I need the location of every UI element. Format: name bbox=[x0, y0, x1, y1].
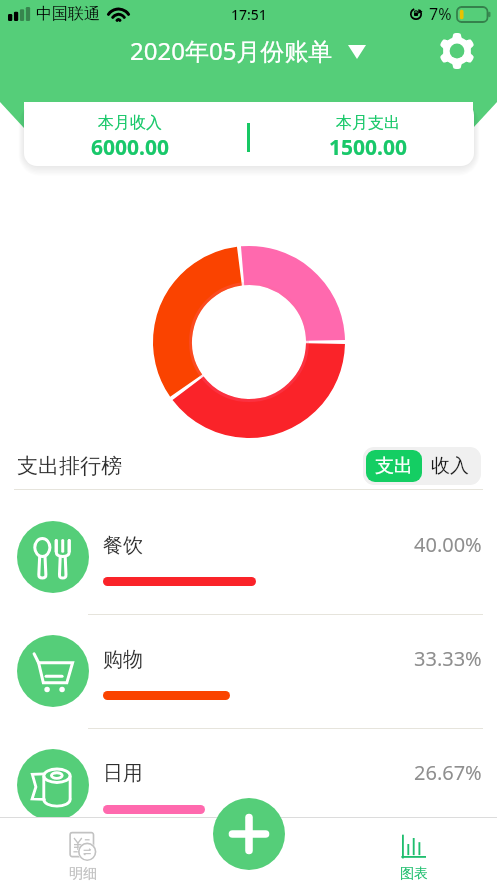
staticText: 明细 bbox=[69, 865, 97, 883]
staticText: 26.67% bbox=[414, 759, 482, 786]
staticText: 支出排行榜 bbox=[17, 453, 122, 479]
staticText: 6000.00 bbox=[91, 133, 169, 162]
button[interactable]: 图表 bbox=[331, 817, 497, 883]
staticText: 支出 bbox=[375, 454, 413, 478]
staticText: 7% bbox=[429, 3, 452, 25]
button[interactable]: 明细 bbox=[0, 817, 165, 883]
staticText: 中国联通 bbox=[36, 4, 100, 24]
button[interactable]: 2020年05月份账单 bbox=[130, 34, 366, 67]
button[interactable]: Settings bbox=[437, 31, 477, 71]
button[interactable]: 日用 bbox=[0, 729, 497, 843]
staticText: 1500.00 bbox=[329, 133, 407, 162]
staticText: 餐饮 bbox=[103, 533, 143, 558]
button[interactable]: Add bbox=[213, 798, 285, 870]
button[interactable]: 餐饮 bbox=[0, 490, 497, 615]
staticText: 图表 bbox=[400, 865, 428, 883]
button[interactable]: 收入 bbox=[422, 450, 478, 482]
button[interactable]: 支出 bbox=[366, 450, 422, 482]
staticText: 购物 bbox=[103, 647, 143, 672]
staticText: 33.33% bbox=[414, 645, 482, 672]
staticText: 收入 bbox=[431, 454, 469, 478]
staticText: 40.00% bbox=[414, 531, 482, 558]
staticText: 17:51 bbox=[231, 5, 267, 24]
staticText: 本月支出 bbox=[336, 113, 400, 133]
staticText: 2020年05月份账单 bbox=[130, 34, 333, 67]
button[interactable]: 购物 bbox=[0, 615, 497, 729]
staticText: 本月收入 bbox=[98, 113, 162, 133]
staticText: 日用 bbox=[103, 761, 143, 786]
